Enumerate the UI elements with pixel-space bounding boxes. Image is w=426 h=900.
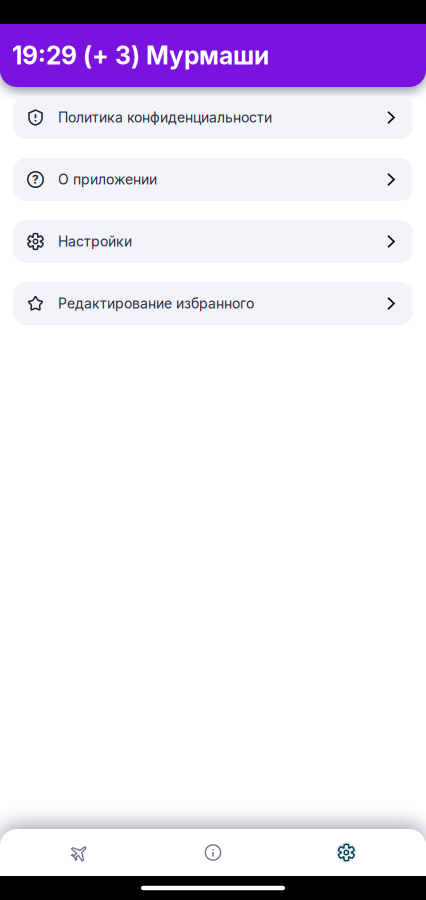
staticText: О приложении [58, 171, 157, 188]
button[interactable]: ? [13, 158, 413, 201]
staticText: ? [32, 172, 39, 186]
staticText: Редактирование избранного [58, 295, 254, 312]
button[interactable]: Политика конфиденциальности [13, 96, 413, 139]
button[interactable]: Редактирование избранного [13, 282, 413, 325]
button[interactable]: Settings [280, 829, 413, 876]
staticText: Настройки [58, 233, 132, 250]
button[interactable]: About [146, 829, 280, 876]
staticText: Политика конфиденциальности [58, 109, 272, 126]
button[interactable]: Настройки [13, 220, 413, 263]
button[interactable]: Flights [13, 829, 146, 876]
staticText: 19:29 (+ 3) Мурмаши [12, 41, 269, 70]
